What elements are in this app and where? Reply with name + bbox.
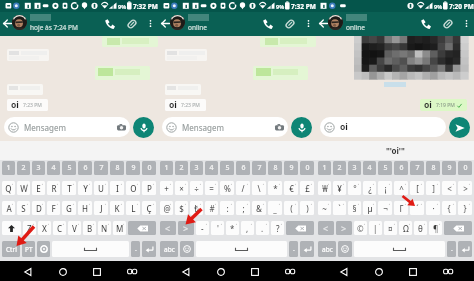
button[interactable]: 7: [410, 161, 424, 175]
button[interactable]: =: [205, 181, 218, 195]
button[interactable]: ¤: [384, 221, 397, 235]
button[interactable]: \: [252, 181, 266, 195]
button[interactable]: _: [268, 201, 282, 215]
button[interactable]: Call: [260, 16, 275, 31]
button[interactable]: £: [300, 181, 314, 195]
button[interactable]: 2: [175, 161, 188, 175]
button[interactable]: 8: [110, 161, 124, 175]
button[interactable]: ·: [426, 201, 440, 215]
button[interactable]: T: [62, 181, 76, 195]
button[interactable]: Backspace: [286, 221, 314, 235]
button[interactable]: Call: [102, 16, 117, 31]
button[interactable]: ©: [354, 221, 367, 235]
button[interactable]: µ: [363, 201, 376, 215]
button[interactable]: &: [252, 201, 266, 215]
button[interactable]: Emoji: [338, 241, 352, 257]
button[interactable]: Ctrl: [2, 241, 20, 257]
button[interactable]: F: [47, 201, 60, 215]
button[interactable]: ~: [318, 201, 331, 215]
button[interactable]: 5: [62, 161, 76, 175]
button[interactable]: 3: [190, 161, 203, 175]
button[interactable]: [: [410, 181, 424, 195]
button[interactable]: Enter: [142, 241, 156, 257]
button[interactable]: S: [17, 201, 30, 215]
button[interactable]: A: [2, 201, 15, 215]
button[interactable]: ₩: [318, 181, 331, 195]
button[interactable]: 9: [284, 161, 298, 175]
button[interactable]: Space: [354, 241, 445, 257]
button[interactable]: Enter: [458, 241, 472, 257]
button[interactable]: More options: [459, 16, 473, 30]
button[interactable]: ´: [410, 201, 424, 215]
button[interactable]: `: [333, 201, 346, 215]
button[interactable]: Back: [336, 264, 351, 279]
button[interactable]: Γ: [394, 201, 408, 215]
button[interactable]: K: [110, 201, 124, 215]
button[interactable]: 1: [160, 161, 173, 175]
button[interactable]: %: [220, 181, 234, 195]
button[interactable]: N: [98, 221, 111, 235]
button[interactable]: ^: [394, 181, 408, 195]
button[interactable]: 3: [348, 161, 361, 175]
button[interactable]: Back: [1, 17, 14, 30]
button[interactable]: Home: [213, 264, 228, 279]
button[interactable]: Next page: [336, 221, 352, 235]
button[interactable]: Photo: [354, 36, 468, 79]
button[interactable]: 1: [2, 161, 15, 175]
button[interactable]: 8: [268, 161, 282, 175]
button[interactable]: G: [62, 201, 76, 215]
button[interactable]: Space: [196, 241, 287, 257]
button[interactable]: ¥: [333, 181, 346, 195]
button[interactable]: Shift: [2, 221, 21, 235]
button[interactable]: [328, 15, 343, 30]
button[interactable]: Attach: [124, 16, 139, 31]
button[interactable]: /: [236, 181, 250, 195]
button[interactable]: Split screen: [282, 264, 297, 279]
button[interactable]: Attach: [282, 16, 297, 31]
button[interactable]: ,: [241, 221, 254, 235]
button[interactable]: R: [47, 181, 60, 195]
button[interactable]: §: [348, 201, 361, 215]
button[interactable]: Space: [52, 241, 129, 257]
button[interactable]: abc: [318, 241, 336, 257]
button[interactable]: 7: [252, 161, 266, 175]
button[interactable]: Send: [449, 117, 470, 138]
button[interactable]: C: [53, 221, 66, 235]
button[interactable]: }: [458, 201, 472, 215]
button[interactable]: X: [38, 221, 51, 235]
button[interactable]: Q: [2, 181, 15, 195]
button[interactable]: M: [113, 221, 126, 235]
button[interactable]: I: [110, 181, 124, 195]
button[interactable]: [12, 15, 27, 30]
button[interactable]: Recent apps: [247, 264, 262, 279]
button[interactable]: Home: [55, 264, 70, 279]
button[interactable]: ₺: [190, 201, 203, 215]
button[interactable]: ): [300, 201, 314, 215]
button[interactable]: +: [160, 181, 173, 195]
button[interactable]: oi: [165, 99, 206, 111]
button[interactable]: B: [83, 221, 96, 235]
button[interactable]: Period: [289, 241, 298, 257]
button[interactable]: 0: [300, 161, 314, 175]
button[interactable]: More options: [143, 16, 157, 30]
button[interactable]: (: [284, 201, 298, 215]
button[interactable]: ¶: [429, 221, 442, 235]
button[interactable]: Period: [447, 241, 456, 257]
button[interactable]: 7: [94, 161, 108, 175]
button[interactable]: P: [142, 181, 156, 195]
button[interactable]: Previous page: [160, 221, 176, 235]
button[interactable]: Z: [23, 221, 36, 235]
button[interactable]: O: [126, 181, 140, 195]
button[interactable]: [170, 15, 185, 30]
button[interactable]: 6: [394, 161, 408, 175]
button[interactable]: Ç: [142, 201, 156, 215]
button[interactable]: Recent apps: [89, 264, 104, 279]
button[interactable]: 4: [363, 161, 376, 175]
button[interactable]: :: [220, 201, 234, 215]
button[interactable]: °: [348, 181, 361, 195]
button[interactable]: More options: [301, 16, 315, 30]
button[interactable]: 5: [220, 161, 234, 175]
button[interactable]: |: [369, 221, 382, 235]
button[interactable]: ÷: [190, 181, 203, 195]
button[interactable]: .: [256, 221, 269, 235]
